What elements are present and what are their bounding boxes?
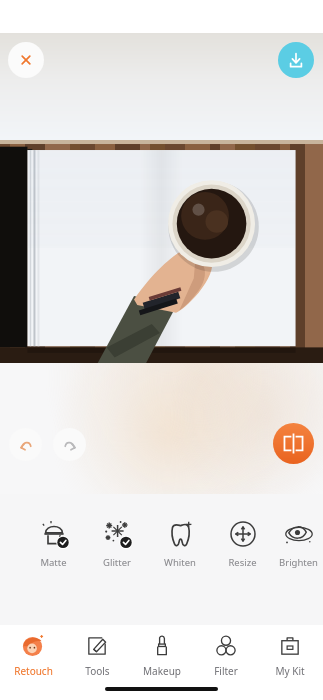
button[interactable]: My Kit (259, 634, 321, 678)
button[interactable]: Retouch (2, 634, 64, 678)
staticText: Resize (228, 556, 257, 569)
button[interactable]: Redo (53, 428, 86, 461)
button[interactable]: Compare (273, 423, 314, 464)
staticText: Tools (85, 664, 110, 678)
staticText: My Kit (275, 664, 305, 678)
staticText: Filter (214, 664, 238, 678)
button[interactable]: Close (8, 42, 44, 78)
button[interactable]: Glitter (85, 517, 148, 569)
button[interactable]: Matte (22, 517, 85, 569)
staticText: Retouch (14, 664, 53, 678)
button[interactable]: Tools (66, 634, 128, 678)
staticText: Glitter (103, 556, 131, 569)
staticText: Whiten (164, 556, 196, 569)
button[interactable]: Undo (9, 428, 42, 461)
button[interactable]: Whiten (148, 517, 211, 569)
button[interactable]: Makeup (131, 634, 193, 678)
button[interactable]: Resize (211, 517, 274, 569)
button[interactable]: Brighten (274, 517, 323, 569)
button[interactable]: Filter (195, 634, 257, 678)
staticText: Brighten (279, 556, 318, 569)
staticText: Makeup (143, 664, 181, 678)
staticText: Matte (40, 556, 67, 569)
button[interactable]: Save (278, 42, 314, 78)
